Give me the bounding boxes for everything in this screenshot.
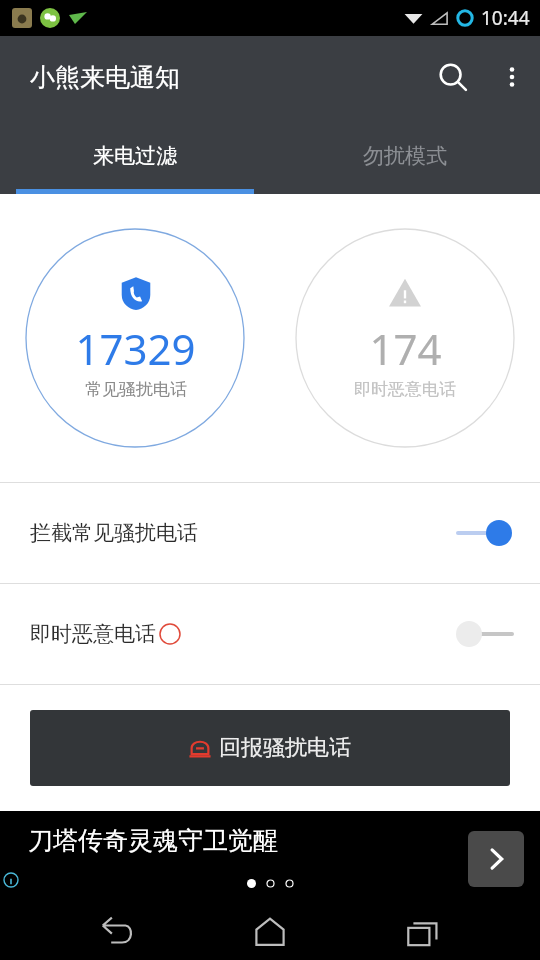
button[interactable]: 拦截常见骚扰电话 (0, 483, 540, 583)
staticText: 174 (369, 320, 442, 377)
staticText: 17329 (75, 320, 196, 377)
button[interactable]: 来电过滤 (0, 118, 270, 194)
staticText: 小熊来电通知 (30, 62, 180, 93)
button[interactable]: 17329 (0, 194, 270, 482)
button[interactable]: 勿扰模式 (270, 118, 540, 194)
button[interactable]: 174 (270, 194, 540, 482)
button[interactable]: Search (422, 46, 484, 108)
button[interactable]: Recent apps (388, 908, 458, 958)
button[interactable]: Back (83, 908, 153, 958)
staticText: 即时恶意电话 (30, 621, 156, 647)
staticText: 即时恶意电话 (354, 379, 456, 400)
button[interactable]: More options (484, 49, 540, 105)
button[interactable]: Next (468, 831, 524, 887)
staticText: 拦截常见骚扰电话 (30, 520, 198, 546)
button[interactable]: Toggle off (456, 618, 512, 650)
button[interactable]: 刀塔传奇灵魂守卫觉醒 (0, 811, 540, 906)
button[interactable]: 回报骚扰电话 (30, 710, 510, 786)
staticText: 回报骚扰电话 (219, 734, 351, 762)
button[interactable]: 即时恶意电话 (0, 584, 540, 684)
button[interactable]: Toggle on (456, 517, 512, 549)
staticText: 常见骚扰电话 (85, 379, 187, 400)
staticText: 来电过滤 (93, 143, 177, 169)
staticText: 刀塔传奇灵魂守卫觉醒 (28, 825, 278, 856)
staticText: 10:44 (481, 5, 530, 31)
staticText: 勿扰模式 (363, 143, 447, 169)
button[interactable]: Home (235, 908, 305, 958)
